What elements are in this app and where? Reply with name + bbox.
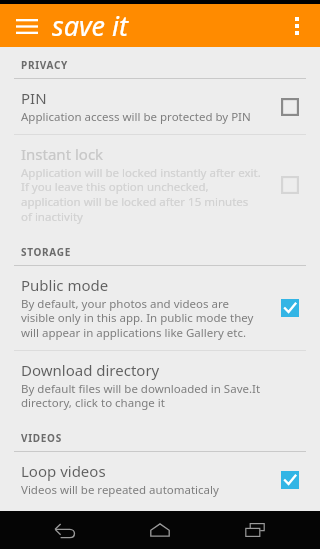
button[interactable]: Public mode (0, 266, 320, 350)
staticText: Application will be locked instantly aft… (21, 165, 262, 225)
staticText: Videos will be repeated automaticaly (21, 482, 219, 498)
staticText: STORAGE (21, 245, 72, 259)
button[interactable]: Recent apps (225, 511, 285, 549)
staticText: Instant lock (21, 144, 104, 164)
button[interactable]: Download directory (0, 351, 320, 420)
button[interactable]: Open navigation drawer (10, 9, 44, 43)
staticText: Loop videos (21, 461, 106, 481)
staticText: Public mode (21, 275, 109, 295)
button[interactable]: Loop videos (0, 452, 320, 507)
staticText: PRIVACY (21, 58, 69, 72)
staticText: save it (52, 7, 129, 44)
staticText: By default files will be downloaded in S… (21, 381, 262, 411)
staticText: VIDEOS (21, 431, 62, 445)
button[interactable]: Home (130, 511, 190, 549)
staticText: PIN (21, 88, 47, 108)
button[interactable]: More options (280, 9, 314, 43)
button[interactable]: Instant lock (0, 135, 320, 234)
button[interactable]: Back (35, 511, 95, 549)
staticText: By default, your photos and videos are v… (21, 296, 262, 341)
staticText: Download directory (21, 360, 160, 380)
staticText: Application access will be protected by … (21, 109, 251, 125)
button[interactable]: PIN (0, 79, 320, 134)
